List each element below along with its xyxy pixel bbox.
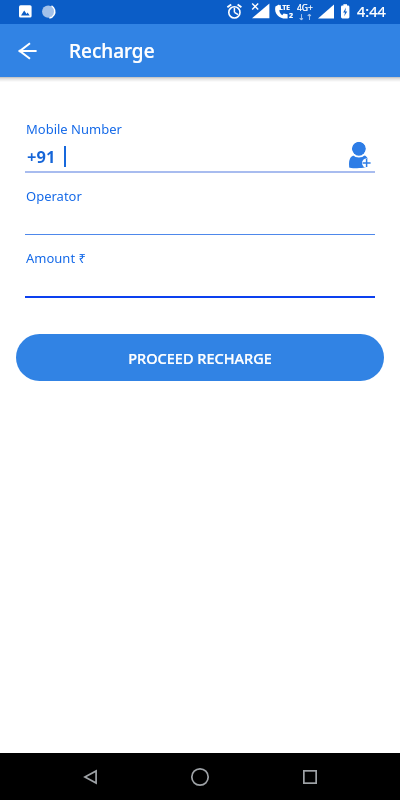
button[interactable]: Back [60, 753, 120, 800]
staticText: Amount ₹ [26, 249, 86, 267]
staticText: Mobile Number [26, 120, 122, 138]
staticText: +91 [27, 145, 56, 167]
button[interactable]: Back [8, 32, 46, 70]
button[interactable]: PROCEED RECHARGE [16, 334, 384, 381]
staticText: ↓ ↑ [298, 11, 313, 22]
staticText: PROCEED RECHARGE [128, 348, 272, 368]
staticText: 2 [289, 11, 294, 21]
staticText: Operator [26, 187, 82, 205]
button[interactable]: Recent apps [280, 753, 340, 800]
staticText: LTE [279, 3, 290, 12]
staticText: Recharge [69, 38, 155, 64]
button[interactable]: Home [170, 753, 230, 800]
staticText: 4:44 [357, 1, 386, 21]
staticText: 4G+ [297, 2, 313, 14]
button[interactable]: Choose contact [345, 139, 375, 169]
